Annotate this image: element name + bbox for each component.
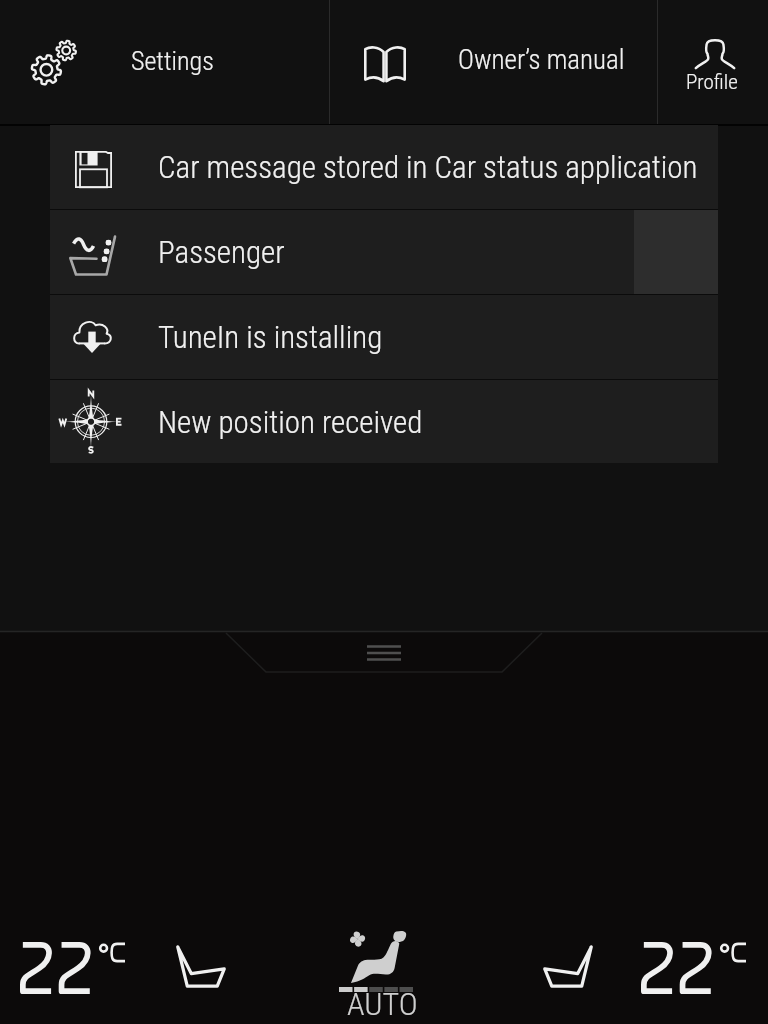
staticText: Owner’s manual [458, 44, 625, 76]
button[interactable]: Climate auto [338, 925, 418, 1020]
button[interactable]: Passenger seat heating [531, 933, 605, 1001]
staticText: New position received [158, 404, 423, 440]
button[interactable] [641, 942, 746, 994]
button[interactable]: Profile [658, 0, 768, 126]
button[interactable]: TuneIn is installing [50, 295, 718, 379]
button[interactable]: Owner’s manual [330, 0, 657, 126]
button[interactable]: Car message stored in Car status applica… [50, 125, 718, 209]
button[interactable]: Settings [0, 0, 329, 126]
staticText: AUTO [347, 985, 418, 1023]
staticText: Settings [131, 46, 214, 76]
staticText: TuneIn is installing [158, 319, 383, 355]
staticText: Profile [686, 70, 738, 95]
staticText: Passenger [158, 234, 285, 270]
button[interactable] [20, 942, 125, 994]
button[interactable]: New position received [50, 380, 718, 463]
button[interactable]: Driver seat heating [164, 933, 238, 1001]
staticText: Car message stored in Car status applica… [158, 149, 698, 185]
button[interactable]: Passenger [50, 210, 718, 294]
